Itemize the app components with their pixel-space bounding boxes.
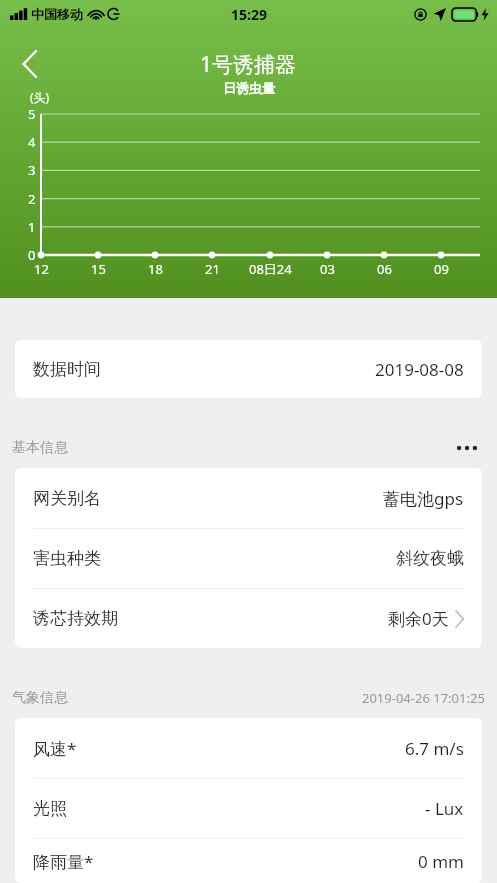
staticText: 气象信息 (12, 689, 68, 707)
button[interactable]: 风速* (15, 718, 482, 778)
staticText: 光照 (33, 798, 67, 819)
staticText: 08日24 (249, 260, 292, 278)
staticText: 日诱虫量 (223, 80, 275, 96)
staticText: 3 (28, 161, 36, 179)
staticText: 数据时间 (33, 359, 101, 380)
staticText: 12 (34, 260, 49, 278)
button[interactable]: 数据时间 (15, 340, 482, 398)
button[interactable]: Back (8, 42, 52, 86)
button[interactable]: 网关别名 (15, 468, 482, 528)
button[interactable]: 诱芯持效期 (15, 589, 482, 648)
staticText: 03 (320, 260, 335, 278)
staticText: 21 (205, 260, 220, 278)
staticText: 6.7 m/s (405, 737, 464, 760)
button[interactable]: 光照 (15, 779, 482, 838)
staticText: 09 (434, 260, 449, 278)
staticText: 2019-08-08 (375, 358, 464, 381)
staticText: 2 (28, 190, 36, 208)
staticText: 蓄电池gps (383, 487, 464, 510)
staticText: 0 (28, 246, 36, 264)
staticText: 4 (28, 133, 36, 151)
staticText: 1 (28, 218, 36, 236)
staticText: 06 (377, 260, 392, 278)
staticText: 中国移动 (31, 6, 83, 22)
button[interactable]: 害虫种类 (15, 529, 482, 588)
staticText: - Lux (425, 797, 464, 820)
staticText: 5 (28, 105, 36, 123)
staticText: 诱芯持效期 (33, 608, 118, 629)
staticText: 2019-04-26 17:01:25 (362, 689, 485, 707)
staticText: 剩余0天 (388, 607, 449, 630)
staticText: 18 (148, 260, 163, 278)
staticText: 15 (91, 260, 106, 278)
staticText: 15:29 (231, 5, 267, 24)
staticText: 害虫种类 (33, 548, 101, 569)
staticText: 降雨量* (33, 850, 94, 873)
button[interactable]: 降雨量* (15, 839, 482, 883)
staticText: 斜纹夜蛾 (396, 548, 464, 569)
button[interactable]: More options (449, 434, 485, 462)
staticText: 网关别名 (33, 488, 101, 509)
staticText: 风速* (33, 737, 77, 760)
staticText: (头) (30, 89, 50, 105)
staticText: 1号诱捕器 (200, 50, 297, 79)
staticText: 基本信息 (12, 439, 68, 457)
staticText: 0 mm (418, 850, 464, 873)
